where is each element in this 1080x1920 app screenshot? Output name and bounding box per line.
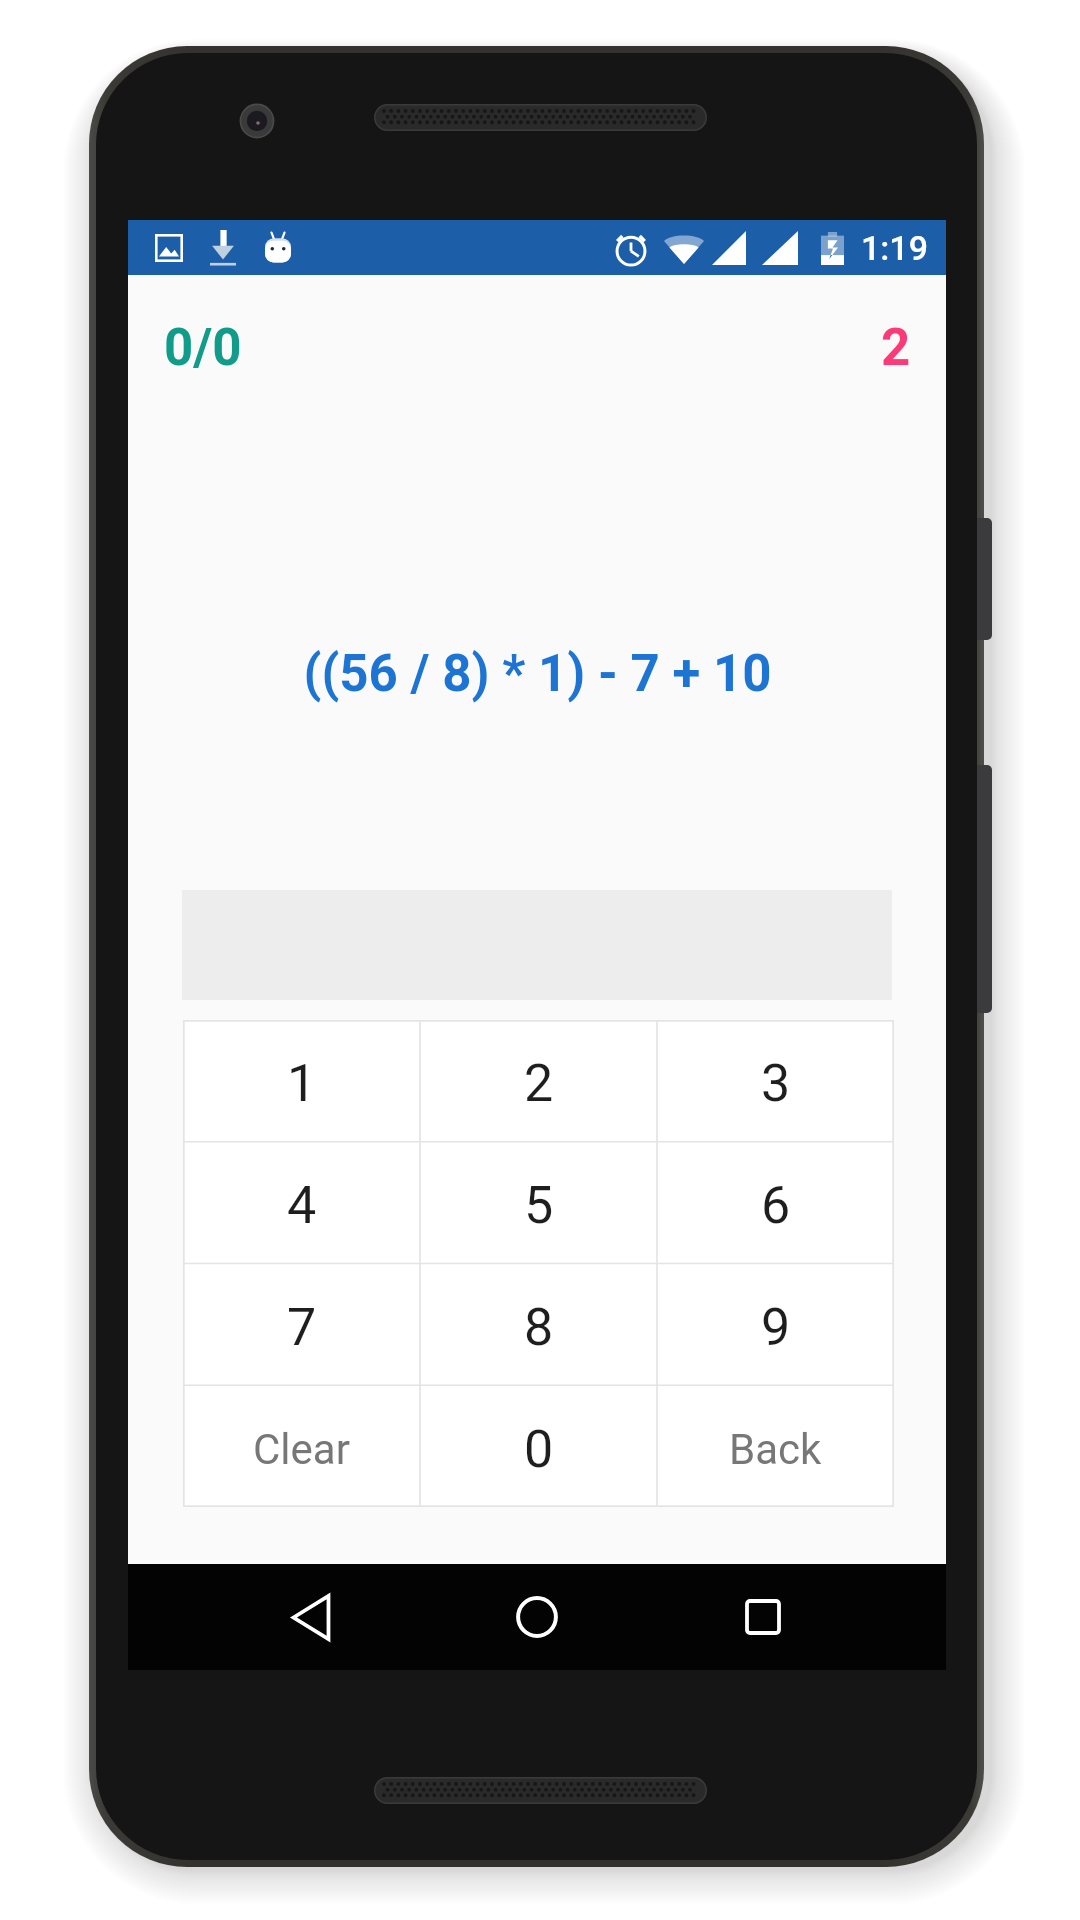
button[interactable]: 4 [183, 1141, 420, 1263]
staticText: ((56 / 8) * 1) - 7 + 10 [303, 644, 772, 704]
staticText: 5 [524, 1175, 554, 1236]
button[interactable]: Back [657, 1385, 894, 1507]
staticText: 4 [287, 1175, 317, 1236]
staticText: 7 [287, 1297, 317, 1358]
staticText: 8 [524, 1297, 554, 1358]
button[interactable]: 9 [657, 1263, 894, 1385]
button[interactable]: Clear [183, 1385, 420, 1507]
button[interactable]: Home [467, 1567, 607, 1667]
button[interactable]: 6 [657, 1141, 894, 1263]
button[interactable]: 2 [420, 1020, 657, 1141]
staticText: 3 [761, 1053, 791, 1114]
staticText: 0 [524, 1419, 554, 1480]
button[interactable]: 0 [420, 1385, 657, 1507]
staticText: 0/0 [164, 318, 242, 378]
button[interactable]: 8 [420, 1263, 657, 1385]
staticText: 1 [287, 1053, 317, 1114]
staticText: 2 [881, 318, 911, 378]
staticText: Back [729, 1425, 822, 1474]
staticText: 1:19 [861, 228, 928, 268]
button[interactable]: 7 [183, 1263, 420, 1385]
staticText: 2 [524, 1053, 554, 1114]
staticText: Clear [253, 1425, 350, 1474]
button[interactable]: 1 [183, 1020, 420, 1141]
staticText: 9 [761, 1297, 791, 1358]
button[interactable]: 5 [420, 1141, 657, 1263]
button[interactable]: 3 [657, 1020, 894, 1141]
staticText: 6 [761, 1175, 791, 1236]
button[interactable]: Recent apps [693, 1567, 833, 1667]
button[interactable]: Back [241, 1567, 381, 1667]
